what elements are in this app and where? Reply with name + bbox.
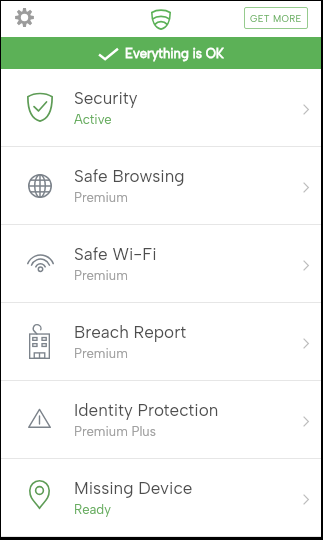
staticText: Premium <box>74 190 128 206</box>
staticText: Safe Wi-Fi <box>74 244 157 264</box>
staticText: Safe Browsing <box>74 166 185 186</box>
button[interactable]: Missing Device <box>1 459 321 536</box>
button[interactable]: Safe Wi-Fi <box>1 225 321 302</box>
other: Lookout logo <box>151 9 171 30</box>
staticText: GET MORE <box>250 13 302 24</box>
staticText: Active <box>74 112 112 128</box>
staticText: Premium <box>74 268 128 284</box>
button[interactable]: Settings <box>10 5 39 34</box>
staticText: Premium Plus <box>74 424 156 440</box>
button[interactable]: Security <box>1 69 321 146</box>
button[interactable]: GET MORE <box>244 7 308 29</box>
button[interactable]: Identity Protection <box>1 381 321 458</box>
button[interactable]: Safe Browsing <box>1 147 321 224</box>
button[interactable]: Breach Report <box>1 303 321 380</box>
staticText: Everything is OK <box>125 46 224 62</box>
staticText: Security <box>74 88 138 108</box>
staticText: Missing Device <box>74 478 193 498</box>
staticText: Premium <box>74 346 128 362</box>
button[interactable]: Everything is OK <box>1 37 321 69</box>
staticText: Breach Report <box>74 322 187 342</box>
staticText: Identity Protection <box>74 400 219 420</box>
staticText: Ready <box>74 502 111 518</box>
